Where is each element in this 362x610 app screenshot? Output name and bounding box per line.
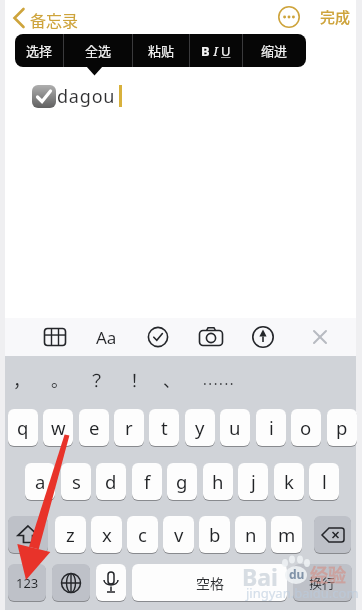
staticText: I bbox=[210, 42, 221, 60]
button[interactable]: 123 bbox=[8, 564, 46, 601]
button[interactable]: c bbox=[127, 516, 158, 553]
staticText: 完成 bbox=[320, 6, 351, 28]
button[interactable]: ， bbox=[6, 362, 36, 396]
button[interactable] bbox=[197, 323, 225, 351]
staticText: o bbox=[300, 415, 312, 440]
staticText: ...... bbox=[203, 370, 236, 389]
button[interactable] bbox=[144, 323, 172, 351]
staticText: a bbox=[35, 469, 46, 494]
staticText: 、 bbox=[163, 367, 180, 392]
button[interactable]: ？ bbox=[81, 362, 111, 396]
button[interactable]: 备忘录 bbox=[8, 4, 98, 32]
staticText: dagou bbox=[57, 84, 116, 109]
staticText: du bbox=[289, 566, 305, 582]
button[interactable]: z bbox=[55, 516, 86, 553]
button[interactable]: 选择 bbox=[15, 34, 63, 67]
button[interactable]: Aa bbox=[92, 323, 120, 351]
button[interactable]: f bbox=[132, 463, 162, 500]
button[interactable]: k bbox=[274, 463, 304, 500]
staticText: Bai bbox=[242, 561, 278, 592]
staticText: 。 bbox=[51, 367, 68, 392]
button[interactable]: a bbox=[25, 463, 55, 500]
staticText: jingyan.baidu.com bbox=[246, 584, 359, 602]
button[interactable]: 。 bbox=[44, 362, 74, 396]
staticText: f bbox=[144, 469, 151, 494]
staticText: r bbox=[125, 415, 133, 440]
button[interactable]: 全选 bbox=[64, 34, 132, 67]
staticText: 123 bbox=[16, 574, 39, 592]
button[interactable]: 缩进 bbox=[243, 34, 306, 67]
button[interactable]: ！ bbox=[119, 362, 149, 396]
staticText: q bbox=[17, 415, 29, 440]
button[interactable] bbox=[306, 323, 334, 351]
staticText: c bbox=[138, 522, 147, 547]
staticText: e bbox=[89, 415, 100, 440]
staticText: v bbox=[174, 522, 184, 547]
staticText: u bbox=[229, 415, 241, 440]
button[interactable] bbox=[249, 323, 277, 351]
button[interactable] bbox=[8, 516, 48, 553]
staticText: 全选 bbox=[85, 41, 112, 60]
staticText: p bbox=[336, 415, 348, 440]
button[interactable] bbox=[277, 5, 301, 29]
button[interactable]: r bbox=[114, 409, 144, 446]
button[interactable]: B bbox=[190, 34, 242, 67]
staticText: z bbox=[66, 522, 75, 547]
button[interactable] bbox=[32, 85, 56, 108]
staticText: U bbox=[221, 42, 231, 60]
staticText: g bbox=[176, 469, 188, 494]
staticText: m bbox=[278, 522, 296, 547]
button[interactable] bbox=[314, 516, 351, 553]
button[interactable]: g bbox=[167, 463, 197, 500]
staticText: d bbox=[105, 469, 117, 494]
button[interactable]: e bbox=[79, 409, 109, 446]
button[interactable]: b bbox=[199, 516, 230, 553]
button[interactable]: x bbox=[91, 516, 122, 553]
button[interactable]: u bbox=[220, 409, 250, 446]
staticText: b bbox=[209, 522, 221, 547]
button[interactable]: h bbox=[203, 463, 233, 500]
button[interactable]: 换行 bbox=[293, 564, 352, 601]
staticText: 缩进 bbox=[261, 41, 288, 60]
button[interactable]: p bbox=[327, 409, 357, 446]
button[interactable]: 空格 bbox=[132, 564, 287, 601]
staticText: y bbox=[195, 415, 205, 440]
staticText: Aa bbox=[96, 326, 117, 349]
staticText: ！ bbox=[126, 367, 143, 392]
button[interactable] bbox=[41, 323, 69, 351]
button[interactable]: w bbox=[43, 409, 73, 446]
staticText: n bbox=[245, 522, 257, 547]
button[interactable]: m bbox=[271, 516, 302, 553]
button[interactable]: n bbox=[235, 516, 266, 553]
staticText: 选择 bbox=[26, 41, 53, 60]
button[interactable]: y bbox=[185, 409, 215, 446]
button[interactable]: d bbox=[96, 463, 126, 500]
button[interactable]: ...... bbox=[193, 362, 245, 396]
button[interactable]: 完成 bbox=[316, 5, 354, 29]
button[interactable] bbox=[96, 564, 126, 601]
button[interactable]: 粘贴 bbox=[133, 34, 189, 67]
button[interactable]: s bbox=[61, 463, 91, 500]
button[interactable]: o bbox=[291, 409, 321, 446]
button[interactable] bbox=[52, 564, 90, 601]
staticText: l bbox=[322, 469, 327, 494]
staticText: t bbox=[161, 415, 168, 440]
button[interactable]: q bbox=[8, 409, 38, 446]
staticText: i bbox=[269, 415, 274, 440]
button[interactable]: l bbox=[309, 463, 339, 500]
staticText: ， bbox=[13, 367, 30, 392]
button[interactable]: i bbox=[256, 409, 286, 446]
button[interactable]: j bbox=[238, 463, 268, 500]
button[interactable]: v bbox=[163, 516, 194, 553]
staticText: B bbox=[201, 42, 210, 60]
staticText: 备忘录 bbox=[30, 8, 79, 31]
staticText: 换行 bbox=[309, 573, 336, 592]
staticText: k bbox=[284, 469, 294, 494]
button[interactable]: 、 bbox=[156, 362, 186, 396]
staticText: 空格 bbox=[196, 573, 224, 593]
staticText: x bbox=[102, 522, 112, 547]
staticText: 经验 bbox=[310, 561, 346, 587]
button[interactable]: t bbox=[149, 409, 179, 446]
staticText: w bbox=[51, 415, 66, 440]
staticText: 粘贴 bbox=[148, 41, 175, 60]
